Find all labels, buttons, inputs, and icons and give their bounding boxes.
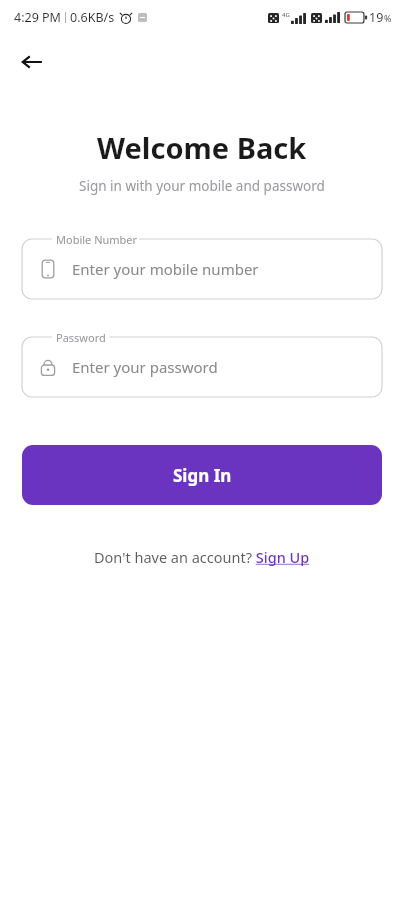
button[interactable]: Back xyxy=(10,40,54,84)
staticText: Mobile Number xyxy=(56,232,138,247)
staticText: 4G xyxy=(282,11,290,19)
button[interactable]: Enter your password xyxy=(22,337,382,397)
staticText: Sign In xyxy=(173,464,232,487)
staticText: Password xyxy=(56,330,106,345)
button[interactable]: Sign In xyxy=(22,445,382,505)
staticText: 4:29 PM xyxy=(14,9,61,26)
staticText: Enter your mobile number xyxy=(72,259,259,279)
staticText: Welcome Back xyxy=(97,128,307,167)
staticText: % xyxy=(384,12,392,24)
staticText: Don't have an account? Sign Up xyxy=(94,547,310,567)
button[interactable]: Enter your mobile number xyxy=(22,239,382,299)
staticText: Enter your password xyxy=(72,357,218,377)
button[interactable]: Don't have an account? Sign Up xyxy=(88,543,316,571)
staticText: 19 xyxy=(369,9,384,26)
staticText: 0.6KB/s xyxy=(70,9,115,26)
staticText: Sign in with your mobile and password xyxy=(79,177,325,195)
